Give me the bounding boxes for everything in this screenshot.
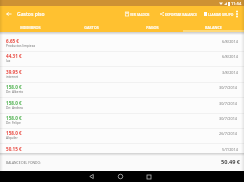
button[interactable]: GASTOS — [61, 22, 122, 32]
staticText: internet — [6, 75, 19, 79]
button[interactable]: MIEMBROS — [0, 22, 61, 32]
staticText: VER SALDOS — [130, 12, 150, 16]
staticText: BALANCE — [205, 25, 222, 30]
button[interactable]: Back — [0, 6, 17, 22]
button[interactable]: 158.0 € — [0, 128, 244, 143]
staticText: De: Andrea — [6, 106, 23, 110]
button[interactable]: EXPORTAR BALANCE — [158, 6, 199, 22]
button[interactable]: 158.0 € — [0, 113, 244, 128]
button[interactable]: PAGOS — [122, 22, 183, 32]
staticText: 50.49 € — [221, 158, 241, 166]
button[interactable]: BALANCE — [183, 22, 244, 32]
button[interactable]: Home — [113, 171, 127, 182]
staticText: MIEMBROS — [20, 25, 41, 30]
staticText: 30/7/2014 — [219, 85, 238, 90]
staticText: Alquiler — [6, 136, 18, 140]
button[interactable]: More options — [236, 6, 244, 22]
staticText: BALANCE DEL FONDO: — [6, 160, 41, 164]
staticText: 158.0 € — [6, 130, 22, 136]
staticText: 30/7/2014 — [219, 101, 238, 106]
button[interactable]: 50.15 € — [0, 144, 244, 159]
staticText: luz — [6, 59, 11, 63]
staticText: EXPORTAR BALANCE — [165, 12, 197, 16]
staticText: GASTOS — [84, 25, 99, 30]
button[interactable]: 39.95 € — [0, 67, 244, 82]
staticText: 3/8/2014 — [222, 70, 238, 75]
button[interactable]: 158.0 € — [0, 82, 244, 97]
staticText: 50.15 € — [6, 146, 22, 152]
staticText: 11:54 — [231, 1, 242, 6]
staticText: 39.95 € — [6, 69, 22, 75]
staticText: 6/8/2014 — [222, 39, 238, 44]
staticText: 6.65 € — [6, 38, 19, 44]
staticText: 6/8/2014 — [222, 54, 238, 59]
staticText: 26/7/2014 — [219, 131, 238, 136]
button[interactable]: Recents — [142, 171, 156, 182]
staticText: De: Felipe — [6, 121, 21, 125]
button[interactable]: 44.31 € — [0, 51, 244, 66]
staticText: 158.0 € — [6, 100, 22, 106]
button[interactable]: 6.65 € — [0, 36, 244, 51]
button[interactable]: LLAMAR GRUPO — [202, 6, 236, 22]
staticText: 158.0 € — [6, 84, 22, 90]
button[interactable]: Back — [84, 171, 98, 182]
staticText: Productos limpieza — [6, 44, 36, 48]
staticText: 5/7/2014 — [222, 147, 238, 152]
button[interactable]: VER SALDOS — [123, 6, 152, 22]
staticText: Gastos piso — [17, 11, 45, 18]
staticText: De: Alberto — [6, 90, 24, 94]
staticText: PAGOS — [146, 25, 159, 30]
staticText: 30/7/2014 — [219, 116, 238, 121]
staticText: LLAMAR GRUPO — [208, 12, 234, 16]
staticText: 44.31 € — [6, 53, 22, 59]
button[interactable]: 158.0 € — [0, 98, 244, 113]
staticText: 158.0 € — [6, 115, 22, 121]
